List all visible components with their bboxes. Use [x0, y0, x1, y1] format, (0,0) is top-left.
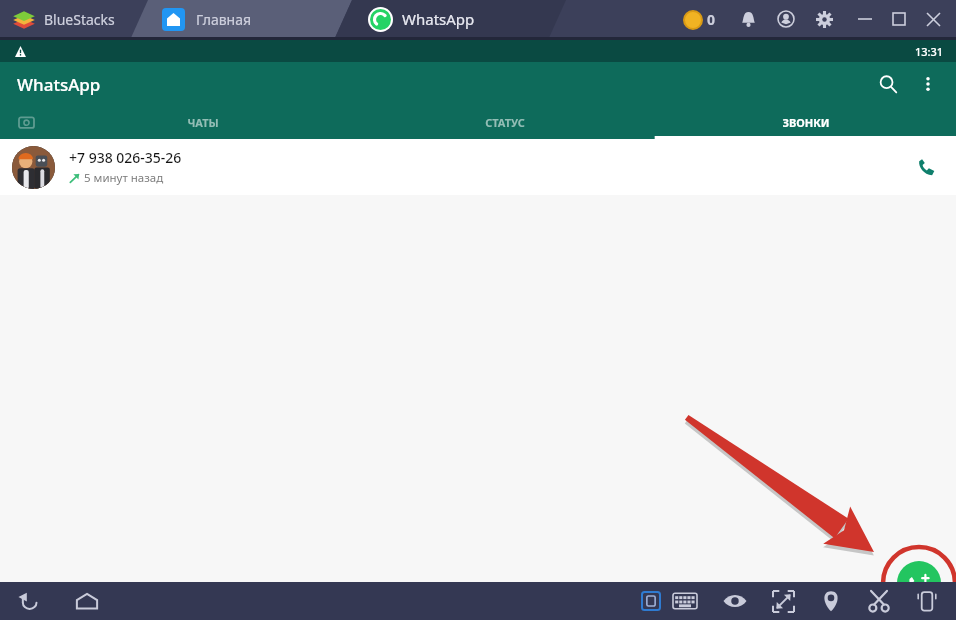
staticText: WhatsApp — [17, 73, 101, 96]
staticText: ЗВОНКИ — [782, 115, 830, 130]
button[interactable]: Account — [774, 7, 798, 31]
button[interactable]: Keyboard — [668, 584, 702, 618]
button[interactable]: Eye — [718, 584, 752, 618]
button[interactable]: ЗВОНКИ — [655, 106, 956, 139]
button[interactable]: Home — [68, 582, 106, 620]
button[interactable]: Minimize — [852, 6, 878, 32]
button[interactable]: New call — [897, 561, 941, 605]
button[interactable]: Главная — [196, 10, 252, 29]
button[interactable]: Settings — [812, 7, 836, 31]
button[interactable]: +7 938 026-35-26 — [0, 139, 956, 195]
button[interactable]: Rotate — [636, 586, 666, 616]
button[interactable]: Back — [10, 582, 48, 620]
staticText: +7 938 026-35-26 — [69, 148, 182, 167]
button[interactable]: Search — [868, 64, 908, 104]
staticText: 5 минут назад — [84, 170, 164, 186]
button[interactable]: ЧАТЫ — [52, 106, 354, 139]
button[interactable]: Location — [814, 584, 848, 618]
button[interactable]: Call — [906, 147, 946, 187]
staticText: BlueStacks — [44, 10, 115, 29]
button[interactable]: Maximize — [886, 6, 912, 32]
staticText: ЧАТЫ — [187, 115, 219, 130]
button[interactable]: Fullscreen — [766, 584, 800, 618]
button[interactable]: СТАТУС — [354, 106, 655, 139]
button[interactable]: Notifications — [736, 7, 760, 31]
button[interactable]: More options — [908, 64, 948, 104]
staticText: СТАТУС — [485, 115, 525, 130]
button[interactable]: 0 — [680, 10, 720, 29]
button[interactable]: Screenshot — [862, 584, 896, 618]
staticText: 0 — [707, 10, 716, 29]
staticText: 13:31 — [915, 44, 944, 59]
button[interactable]: Camera — [0, 106, 52, 139]
button[interactable]: Shake — [910, 584, 944, 618]
button[interactable]: Главная — [162, 8, 185, 31]
button[interactable]: Close — [920, 6, 946, 32]
button[interactable]: WhatsApp — [402, 9, 475, 29]
